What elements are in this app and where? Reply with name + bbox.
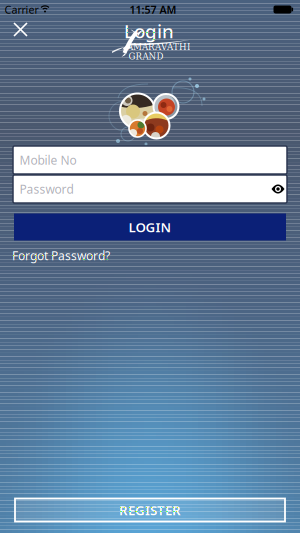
staticText: LOGIN [128, 218, 171, 236]
button[interactable]: Password [13, 175, 287, 203]
staticText: Carrier [4, 2, 38, 17]
staticText: Mobile No [19, 152, 76, 168]
button[interactable]: Mobile No [13, 146, 287, 174]
button[interactable]: LOGIN [14, 213, 286, 240]
staticText: Password [19, 181, 73, 197]
staticText: AMARAVATHI [127, 42, 190, 52]
button[interactable] [10, 19, 31, 40]
staticText: Login [124, 19, 174, 43]
staticText: REGISTER [119, 501, 181, 519]
button[interactable]: REGISTER [15, 498, 285, 521]
staticText: Forgot Password? [12, 247, 110, 263]
button[interactable]: Forgot Password? [0, 248, 300, 262]
staticText: GRAND [128, 51, 163, 62]
staticText: 11:57 AM [129, 2, 176, 17]
